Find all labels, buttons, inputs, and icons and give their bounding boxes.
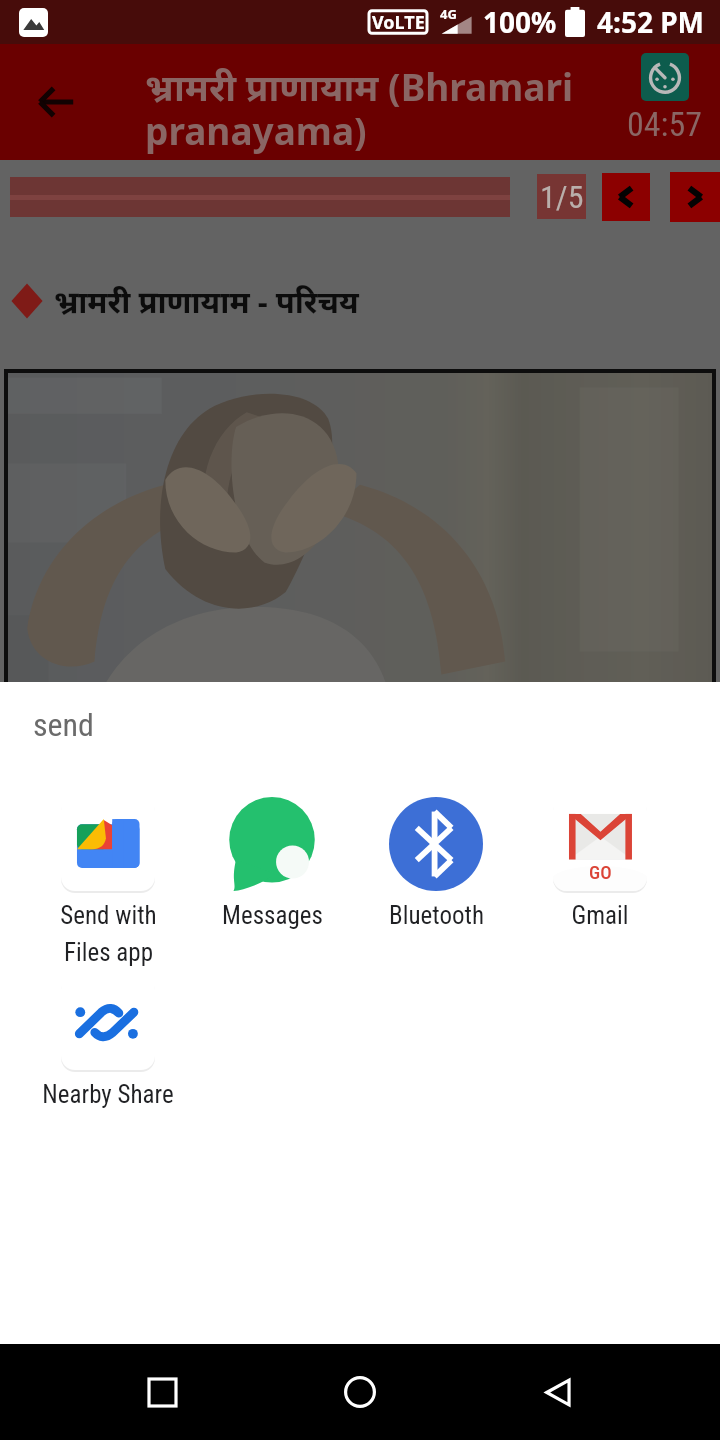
button[interactable]: Timer bbox=[641, 53, 689, 101]
staticText: Messages bbox=[222, 901, 323, 930]
button[interactable]: Messages bbox=[190, 797, 354, 930]
staticText: Nearby Share bbox=[42, 1080, 174, 1109]
staticText: भ्रामरी प्राणायाम (Bhramari pranayama) bbox=[145, 61, 600, 156]
staticText: Bluetooth bbox=[389, 901, 484, 930]
button[interactable]: Recents bbox=[126, 1356, 198, 1428]
button[interactable]: Nearby Share bbox=[26, 976, 190, 1109]
staticText: 4G bbox=[440, 5, 457, 23]
staticText: भ्रामरी प्राणायाम - परिचय bbox=[54, 280, 359, 322]
staticText: GO bbox=[589, 861, 612, 883]
staticText: 100% bbox=[483, 3, 557, 41]
staticText: 1/5 bbox=[540, 178, 584, 216]
button[interactable]: Back bbox=[22, 68, 90, 136]
staticText: Gmail bbox=[571, 901, 629, 930]
button[interactable]: Send with Files app bbox=[26, 797, 190, 967]
staticText: send bbox=[33, 706, 94, 744]
staticText: 04:57 bbox=[627, 104, 703, 144]
button[interactable]: GO bbox=[518, 797, 682, 930]
button[interactable]: Bluetooth bbox=[354, 797, 518, 930]
button[interactable]: Home bbox=[324, 1356, 396, 1428]
button[interactable]: Previous bbox=[602, 173, 650, 221]
button[interactable]: Next bbox=[670, 172, 720, 222]
staticText: Send with Files app bbox=[60, 901, 157, 967]
staticText: 4:52 PM bbox=[597, 3, 704, 41]
staticText: VoLTE bbox=[372, 10, 425, 35]
button[interactable]: Back bbox=[522, 1356, 594, 1428]
